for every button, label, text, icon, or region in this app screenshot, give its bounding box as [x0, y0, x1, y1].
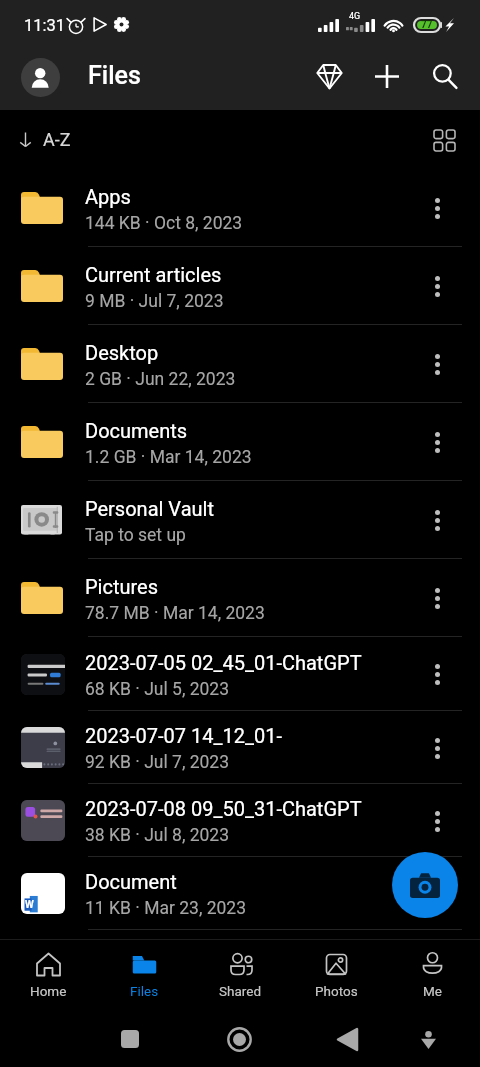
staticText: 9 MB · Jul 7, 2023	[85, 291, 224, 312]
button[interactable]: Current articles	[0, 247, 480, 325]
button[interactable]: Documents	[0, 403, 480, 481]
staticText: Document	[85, 870, 177, 893]
button[interactable]: Add	[365, 54, 409, 98]
staticText: 11 KB · Mar 23, 2023	[85, 898, 247, 919]
staticText: Pictures	[85, 575, 159, 598]
button[interactable]: Desktop	[0, 325, 480, 403]
button[interactable]: Search	[423, 55, 467, 99]
staticText: 2023-07-05 02_45_01-ChatGPT	[85, 651, 362, 674]
staticText: 2023-07-07 14_12_01-	[85, 724, 282, 747]
button[interactable]: Apps	[0, 169, 480, 247]
staticText: 1.2 GB · Mar 14, 2023	[85, 447, 252, 468]
staticText: 92 KB · Jul 7, 2023	[85, 752, 230, 773]
button[interactable]: More options	[415, 799, 459, 843]
button[interactable]: Home	[217, 1017, 261, 1061]
button[interactable]: Photos	[288, 940, 384, 1010]
button[interactable]: More options	[415, 872, 459, 916]
staticText: Files	[130, 983, 159, 999]
staticText: Me	[423, 983, 442, 999]
staticText: Current articles	[85, 263, 222, 286]
button[interactable]: Home	[0, 940, 96, 1010]
button[interactable]: Pictures	[0, 559, 480, 637]
staticText: 2023-07-08 09_50_31-ChatGPT	[85, 797, 362, 820]
staticText: A-Z	[43, 129, 71, 150]
staticText: Photos	[315, 983, 358, 999]
staticText: W	[25, 899, 34, 911]
staticText: Tap to set up	[85, 525, 186, 546]
button[interactable]: More options	[415, 576, 459, 620]
button[interactable]: More options	[415, 726, 459, 770]
button[interactable]: More options	[415, 420, 459, 464]
button[interactable]: More options	[415, 186, 459, 230]
staticText: 38 KB · Jul 8, 2023	[85, 825, 230, 846]
button[interactable]: Files	[96, 940, 192, 1010]
button[interactable]: Scan document	[392, 852, 458, 918]
button[interactable]: Premium	[307, 54, 351, 98]
staticText: Personal Vault	[85, 497, 214, 520]
button[interactable]: Back	[325, 1017, 369, 1061]
button[interactable]: More options	[415, 652, 459, 696]
staticText: 68 KB · Jul 5, 2023	[85, 679, 230, 700]
button[interactable]: W	[0, 857, 480, 930]
button[interactable]: More options	[415, 264, 459, 308]
staticText: Apps	[85, 185, 131, 208]
button[interactable]: More options	[415, 498, 459, 542]
button[interactable]: Recent apps	[108, 1017, 152, 1061]
staticText: 11:31	[24, 16, 66, 35]
button[interactable]: Account	[21, 58, 60, 97]
button[interactable]: More options	[415, 342, 459, 386]
button[interactable]: Switch to grid view	[424, 120, 464, 160]
button[interactable]: 2023-07-07 14_12_01-	[0, 711, 480, 784]
staticText: Documents	[85, 419, 188, 442]
button[interactable]: Personal Vault	[0, 481, 480, 559]
button[interactable]: 2023-07-05 02_45_01-ChatGPT	[0, 637, 480, 711]
staticText: Shared	[219, 983, 262, 999]
button[interactable]: Me	[384, 940, 480, 1010]
staticText: 77	[421, 19, 433, 31]
staticText: 144 KB · Oct 8, 2023	[85, 213, 243, 234]
staticText: 4G	[349, 11, 361, 22]
button[interactable]: Hide keyboard	[406, 1017, 450, 1061]
button[interactable]: A-Z	[16, 124, 75, 155]
staticText: Files	[88, 61, 141, 90]
staticText: 2 GB · Jun 22, 2023	[85, 369, 236, 390]
button[interactable]: Shared	[192, 940, 288, 1010]
staticText: Desktop	[85, 341, 159, 364]
staticText: Home	[30, 983, 67, 999]
staticText: 78.7 MB · Mar 14, 2023	[85, 603, 265, 624]
button[interactable]: 2023-07-08 09_50_31-ChatGPT	[0, 784, 480, 857]
